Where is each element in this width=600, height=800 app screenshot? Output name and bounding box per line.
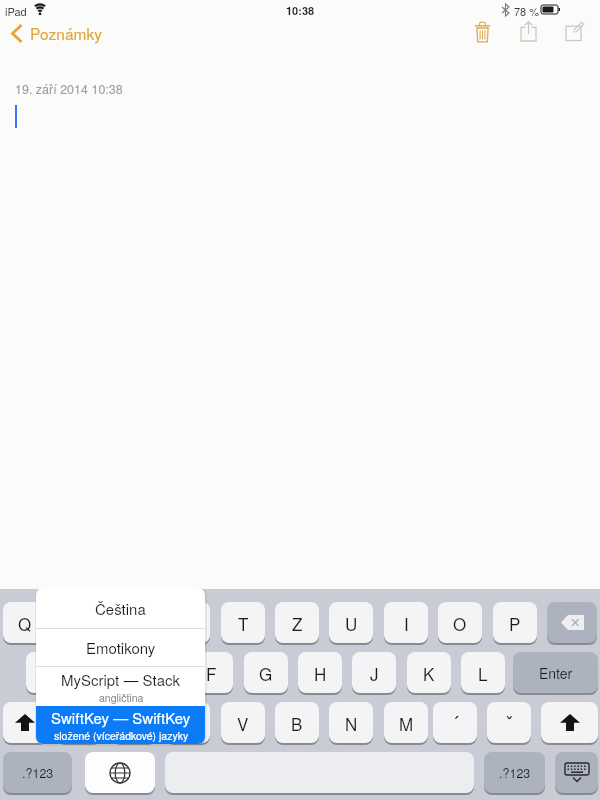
staticText: Emotikony: [86, 637, 156, 658]
button[interactable]: [165, 752, 474, 793]
button[interactable]: Enter: [513, 652, 598, 693]
staticText: .?123: [499, 764, 531, 782]
staticText: Y: [73, 711, 85, 735]
staticText: ´: [452, 708, 459, 737]
staticText: Čeština: [95, 598, 146, 619]
staticText: D: [151, 661, 164, 685]
staticText: A: [42, 661, 54, 685]
staticText: V: [237, 711, 249, 735]
button[interactable]: [3, 702, 47, 743]
staticText: N: [345, 711, 358, 735]
staticText: iPad: [5, 3, 27, 19]
staticText: .?123: [22, 764, 54, 782]
button[interactable]: S: [80, 652, 124, 693]
button[interactable]: X: [112, 702, 156, 743]
staticText: J: [370, 661, 379, 685]
staticText: M: [399, 711, 414, 735]
staticText: G: [259, 661, 273, 685]
button[interactable]: D: [135, 652, 179, 693]
button[interactable]: H: [298, 652, 342, 693]
button[interactable]: W: [57, 602, 101, 643]
staticText: Poznámky: [30, 22, 102, 44]
button[interactable]: [470, 18, 496, 46]
staticText: P: [509, 611, 521, 635]
button[interactable]: C: [166, 702, 210, 743]
staticText: Q: [18, 611, 32, 635]
staticText: S: [96, 661, 108, 685]
button[interactable]: .?123: [484, 752, 545, 793]
button[interactable]: O: [438, 602, 482, 643]
button[interactable]: Z: [275, 602, 319, 643]
button[interactable]: F: [189, 652, 233, 693]
button[interactable]: L: [461, 652, 505, 693]
staticText: ˇ: [506, 708, 513, 737]
staticText: MyScript — Stack: [61, 669, 181, 690]
staticText: složené (víceřádkové) jazyky: [54, 728, 189, 743]
button[interactable]: Poznámky: [8, 20, 118, 48]
staticText: T: [238, 611, 249, 635]
staticText: angličtina: [99, 690, 144, 705]
button[interactable]: Čeština: [36, 588, 205, 628]
button[interactable]: .?123: [3, 752, 72, 793]
button[interactable]: ´: [433, 702, 477, 743]
button[interactable]: ˇ: [487, 702, 531, 743]
staticText: 78 %: [514, 3, 540, 19]
button[interactable]: N: [329, 702, 373, 743]
staticText: X: [128, 711, 140, 735]
staticText: R: [182, 611, 195, 635]
staticText: I: [404, 611, 409, 635]
button[interactable]: Y: [57, 702, 101, 743]
staticText: 10:38: [286, 3, 315, 19]
button[interactable]: U: [329, 602, 373, 643]
button[interactable]: Q: [3, 602, 47, 643]
button[interactable]: [555, 752, 598, 793]
staticText: C: [182, 711, 195, 735]
button[interactable]: [541, 702, 598, 743]
button[interactable]: M: [384, 702, 428, 743]
button[interactable]: I: [384, 602, 428, 643]
staticText: 19. září 2014 10:38: [15, 80, 123, 98]
button[interactable]: [85, 752, 155, 793]
button[interactable]: [515, 18, 541, 46]
button[interactable]: P: [493, 602, 537, 643]
button[interactable]: SwiftKey — SwiftKey: [36, 706, 205, 744]
button[interactable]: V: [221, 702, 265, 743]
staticText: O: [453, 611, 467, 635]
staticText: W: [71, 611, 88, 635]
staticText: H: [314, 661, 327, 685]
button[interactable]: [562, 18, 590, 46]
staticText: F: [206, 661, 217, 685]
button[interactable]: G: [244, 652, 288, 693]
button[interactable]: R: [166, 602, 210, 643]
staticText: K: [423, 661, 435, 685]
button[interactable]: K: [407, 652, 451, 693]
staticText: B: [291, 711, 303, 735]
button[interactable]: MyScript — Stack: [36, 667, 205, 706]
staticText: Z: [292, 611, 303, 635]
button[interactable]: [547, 602, 597, 643]
button[interactable]: B: [275, 702, 319, 743]
button[interactable]: A: [26, 652, 70, 693]
staticText: U: [345, 611, 358, 635]
button[interactable]: Emotikony: [36, 629, 205, 666]
staticText: E: [128, 611, 140, 635]
button[interactable]: T: [221, 602, 265, 643]
staticText: Enter: [539, 663, 573, 683]
staticText: L: [478, 661, 488, 685]
button[interactable]: J: [352, 652, 396, 693]
staticText: SwiftKey — SwiftKey: [51, 707, 191, 728]
button[interactable]: E: [112, 602, 156, 643]
